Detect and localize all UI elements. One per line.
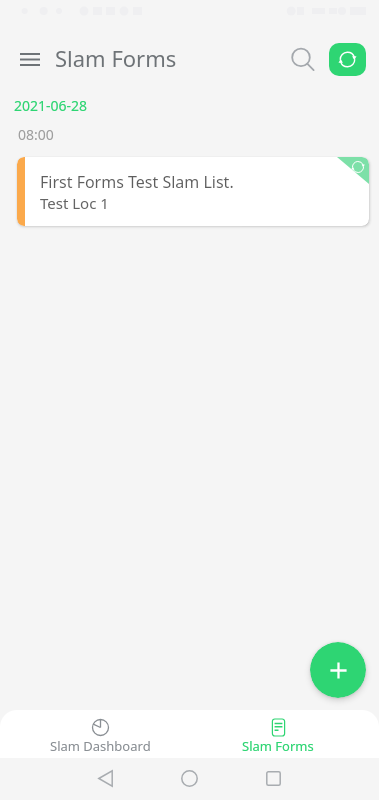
staticText: Slam Forms [242,737,314,755]
staticText: Test Loc 1 [40,193,109,213]
button[interactable]: Add form [310,642,366,698]
staticText: Slam Dashboard [50,737,151,755]
staticText: 2021-06-28 [14,96,88,115]
button[interactable]: Back [90,763,120,793]
staticText: Slam Forms [55,43,177,73]
button[interactable]: Slam Forms [189,719,367,758]
button[interactable]: Slam Dashboard [12,719,189,758]
button[interactable]: Search [286,42,316,72]
staticText: First Forms Test Slam List. [40,171,234,193]
staticText: 08:00 [18,125,54,144]
button[interactable]: Sync [329,43,366,76]
button[interactable]: Home [174,763,204,793]
button[interactable]: Recents [258,763,288,793]
button[interactable]: First Forms Test Slam List. [17,157,369,226]
button[interactable]: Menu [13,43,46,76]
